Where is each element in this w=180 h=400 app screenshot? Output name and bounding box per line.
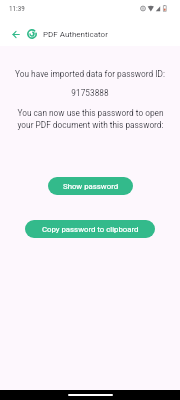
staticText: Show password (63, 182, 119, 191)
staticText: 91753888 (71, 88, 109, 98)
button[interactable]: Back (6, 25, 24, 43)
staticText: Copy password to clipboard (42, 225, 139, 234)
staticText: You can now use this password to open yo… (17, 108, 164, 130)
staticText: PDF Authenticator (43, 30, 108, 39)
staticText: You have imported data for password ID: (15, 69, 165, 79)
button[interactable]: Show password (48, 177, 133, 195)
staticText: 11:39 (9, 4, 25, 12)
button[interactable]: Copy password to clipboard (25, 220, 155, 238)
